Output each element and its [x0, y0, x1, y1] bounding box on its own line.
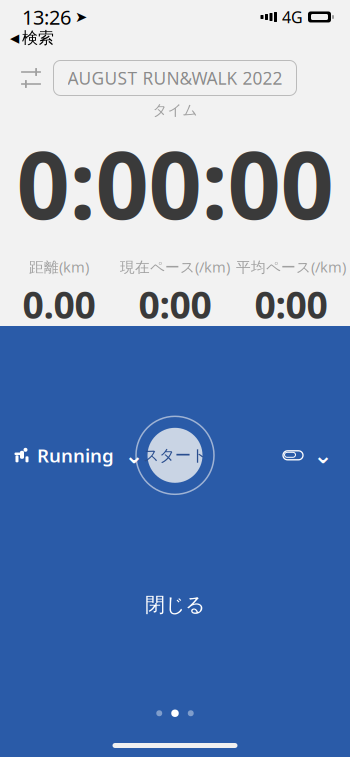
staticText: 0.00	[22, 279, 95, 329]
staticText: AUGUST RUN&WALK 2022	[67, 66, 282, 89]
staticText: 0:00	[254, 279, 327, 329]
staticText: 0:00:00	[16, 121, 333, 245]
button[interactable]: AUGUST RUN&WALK 2022	[53, 60, 296, 95]
staticText: スタート	[143, 445, 207, 465]
button[interactable]: 閉じる	[117, 585, 233, 625]
staticText: 閉じる	[145, 593, 205, 617]
button[interactable]: Running	[14, 435, 141, 476]
staticText: 0:00	[138, 279, 211, 329]
staticText: ➤	[75, 9, 87, 25]
staticText: 距離(km)	[29, 257, 89, 276]
staticText: 13:26	[22, 4, 71, 30]
button[interactable]: ◀	[10, 28, 54, 48]
button[interactable]: Settings	[14, 63, 48, 93]
button[interactable]: Shoes	[282, 440, 330, 470]
staticText: 現在ペース(/km)	[120, 257, 230, 276]
staticText: 4G	[282, 6, 303, 28]
staticText: ◀	[10, 31, 19, 45]
button[interactable]: スタート	[133, 413, 217, 497]
staticText: 平均ペース(/km)	[236, 257, 346, 276]
staticText: ⌄	[124, 442, 143, 468]
staticText: タイム	[152, 101, 197, 119]
staticText: ⌄	[313, 442, 332, 468]
staticText: 検索	[22, 28, 54, 48]
staticText: Running	[37, 443, 114, 468]
